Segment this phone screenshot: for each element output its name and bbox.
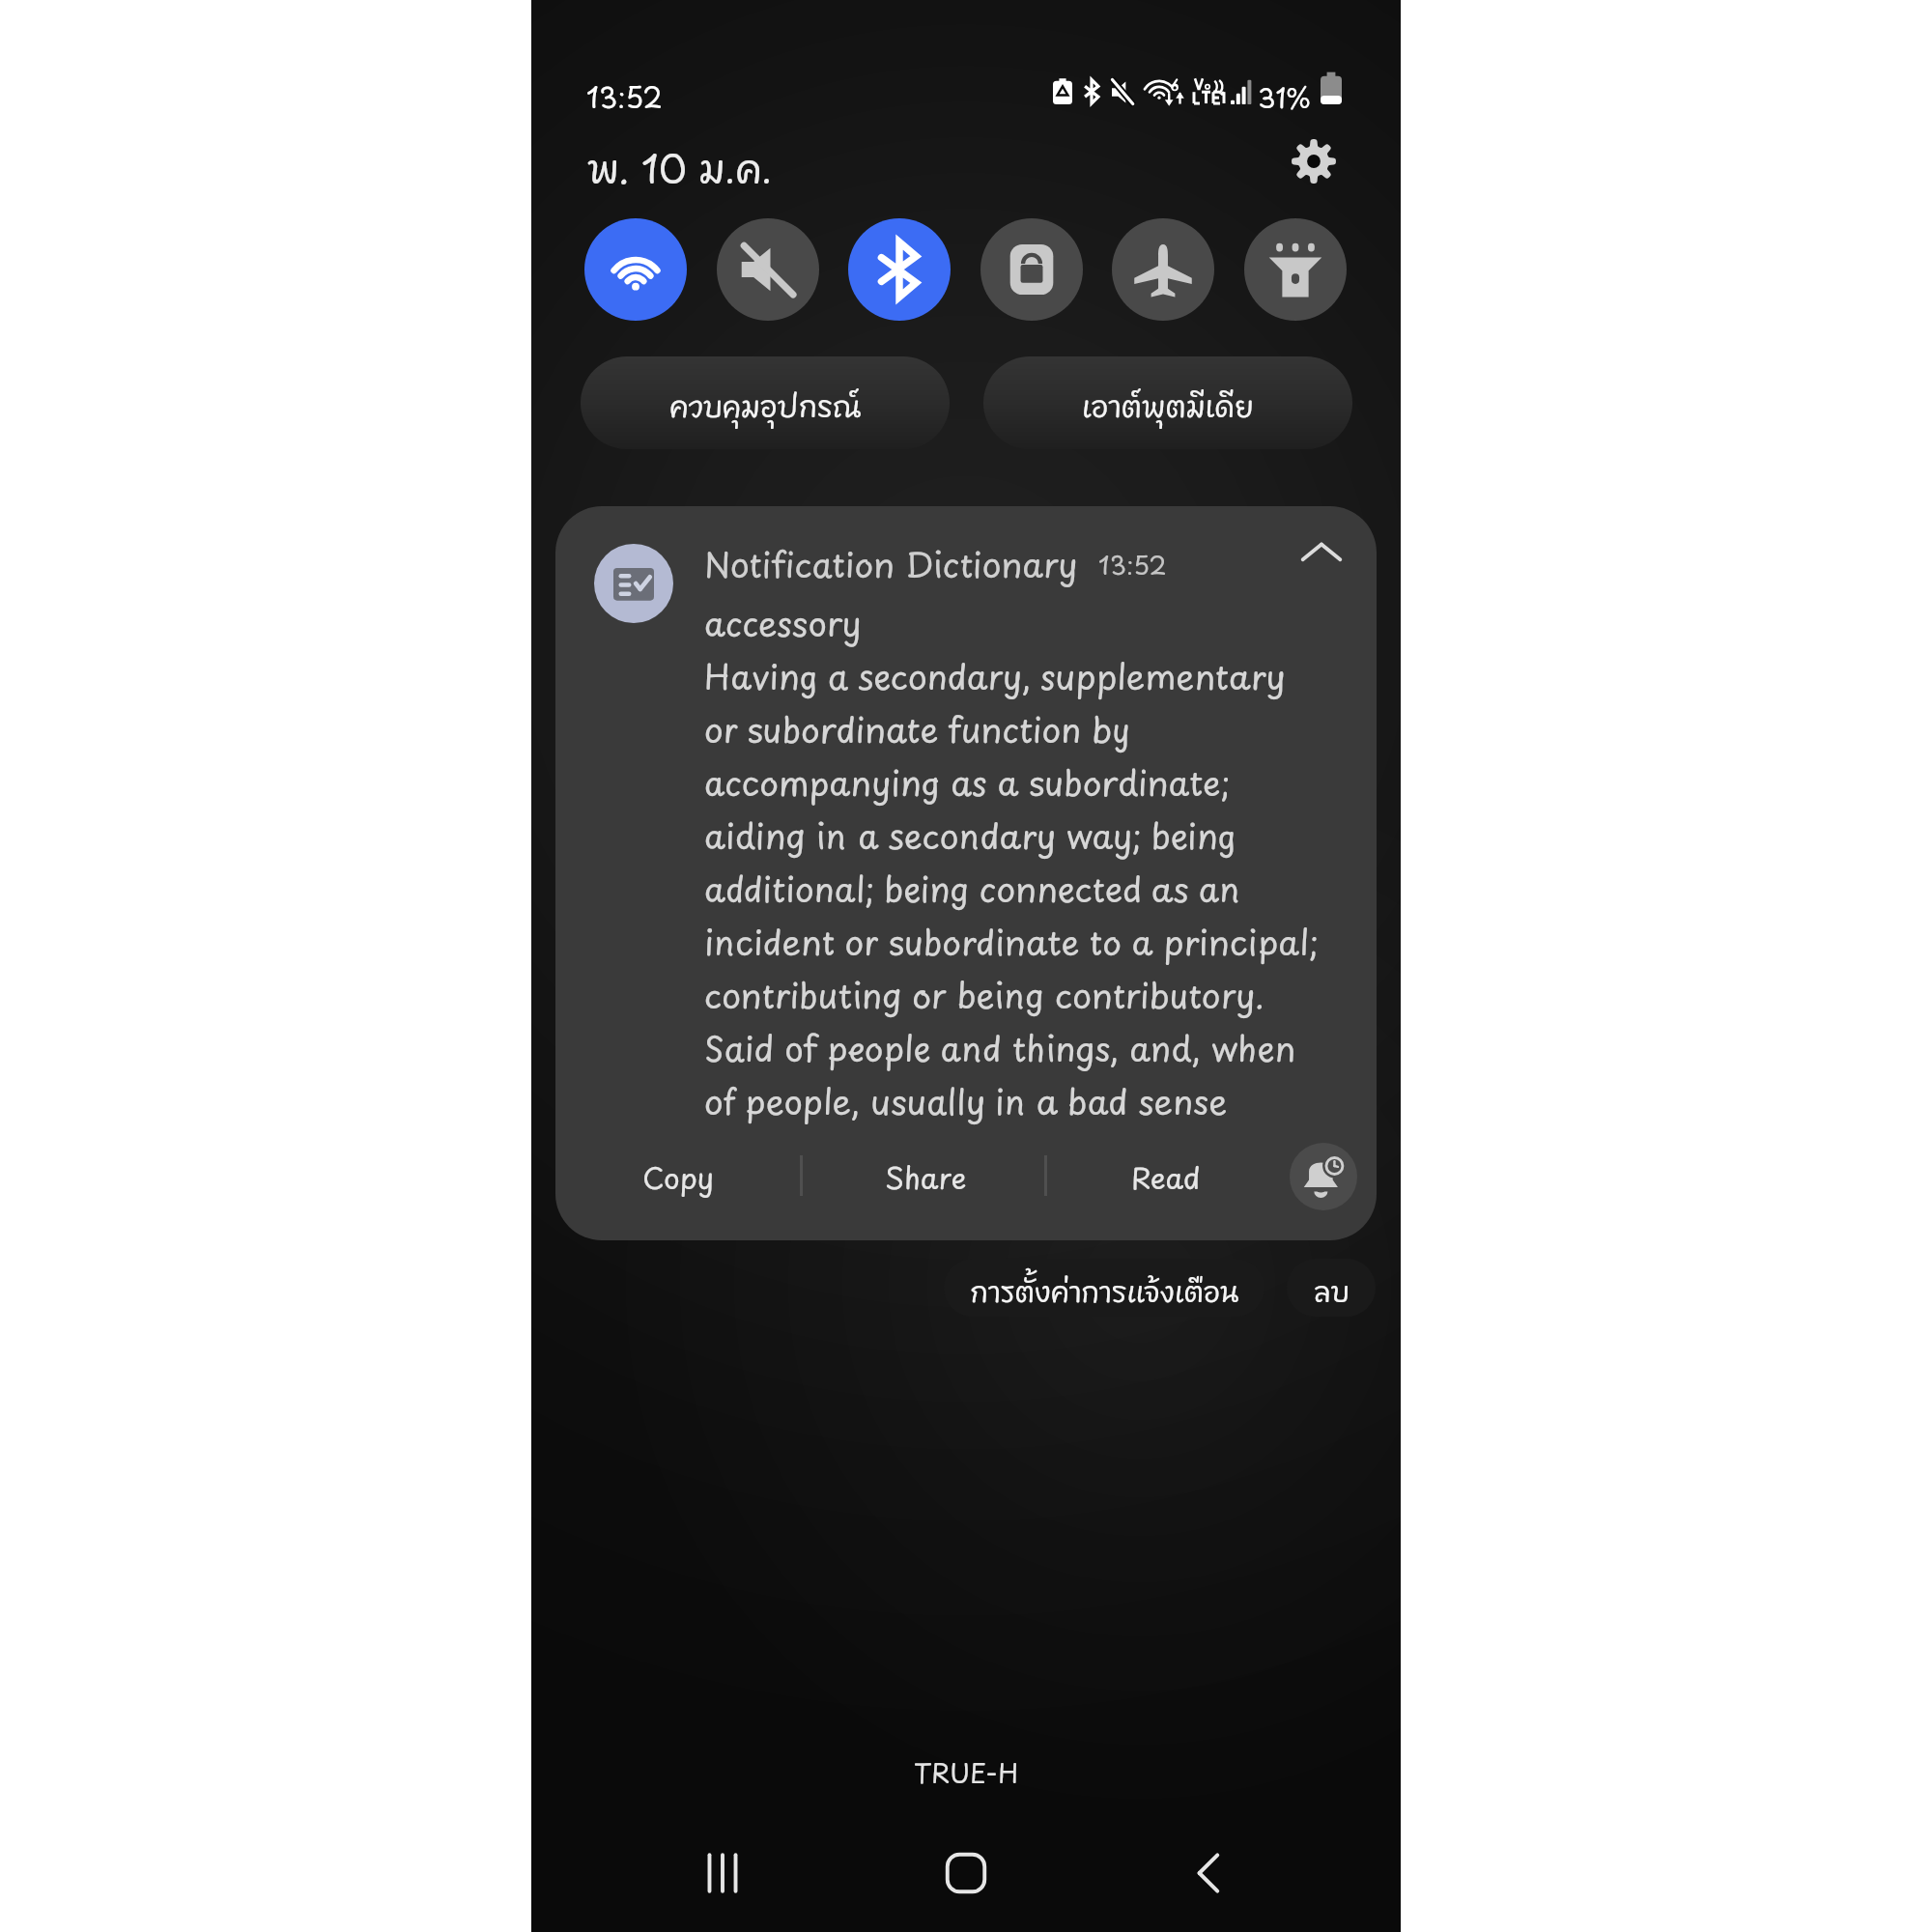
button[interactable]: Settings bbox=[1274, 122, 1353, 201]
button[interactable]: Snooze bbox=[1290, 1143, 1357, 1210]
staticText: Share bbox=[885, 1150, 967, 1200]
button[interactable]: Mute bbox=[717, 218, 819, 321]
staticText: การตั้งค่าการแจ้งเตือน bbox=[970, 1264, 1239, 1313]
button[interactable]: Auto rotate lock bbox=[980, 218, 1083, 321]
button[interactable]: Read bbox=[1105, 1126, 1227, 1223]
staticText: ลบ bbox=[1314, 1264, 1350, 1313]
button[interactable]: ลบ bbox=[1287, 1259, 1376, 1317]
button[interactable]: Airplane mode bbox=[1112, 218, 1214, 321]
staticText: Copy bbox=[642, 1150, 714, 1200]
button[interactable]: Flashlight bbox=[1244, 218, 1347, 321]
button[interactable]: การตั้งค่าการแจ้งเตือน bbox=[944, 1259, 1264, 1317]
button[interactable]: Notification Dictionary bbox=[555, 506, 1377, 1240]
button[interactable]: ควบคุมอุปกรณ์ bbox=[581, 356, 950, 449]
button[interactable]: Home bbox=[913, 1820, 1019, 1926]
staticText: accessory Having a secondary, supplement… bbox=[704, 590, 1326, 1127]
staticText: เอาต์พุตมีเดีย bbox=[1082, 378, 1254, 428]
button[interactable]: Back bbox=[1157, 1820, 1264, 1926]
staticText: 31% bbox=[1258, 71, 1311, 119]
staticText: 13:52 bbox=[1098, 541, 1167, 584]
button[interactable]: Bluetooth bbox=[848, 218, 951, 321]
staticText: TRUE-H bbox=[914, 1747, 1019, 1793]
staticText: พ. 10 ม.ค. bbox=[587, 130, 772, 198]
button[interactable]: เอาต์พุตมีเดีย bbox=[983, 356, 1352, 449]
button[interactable]: Collapse bbox=[1281, 514, 1362, 595]
button[interactable]: Share bbox=[865, 1126, 986, 1223]
staticText: ควบคุมอุปกรณ์ bbox=[669, 378, 862, 428]
staticText: Notification Dictionary bbox=[704, 531, 1078, 590]
staticText: Read bbox=[1131, 1150, 1201, 1200]
button[interactable]: Wi-Fi bbox=[584, 218, 687, 321]
staticText: 13:52 bbox=[586, 70, 663, 119]
button[interactable]: Copy bbox=[617, 1126, 739, 1223]
button[interactable]: Recents bbox=[669, 1820, 776, 1926]
